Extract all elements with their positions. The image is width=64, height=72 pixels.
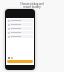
staticText: Choose pickup and return locality [20,2,44,8]
button[interactable] [7,31,33,34]
button[interactable] [7,35,33,38]
button[interactable] [7,19,33,22]
button[interactable]: Continue [7,60,33,63]
button[interactable] [7,27,33,30]
button[interactable] [7,23,33,26]
